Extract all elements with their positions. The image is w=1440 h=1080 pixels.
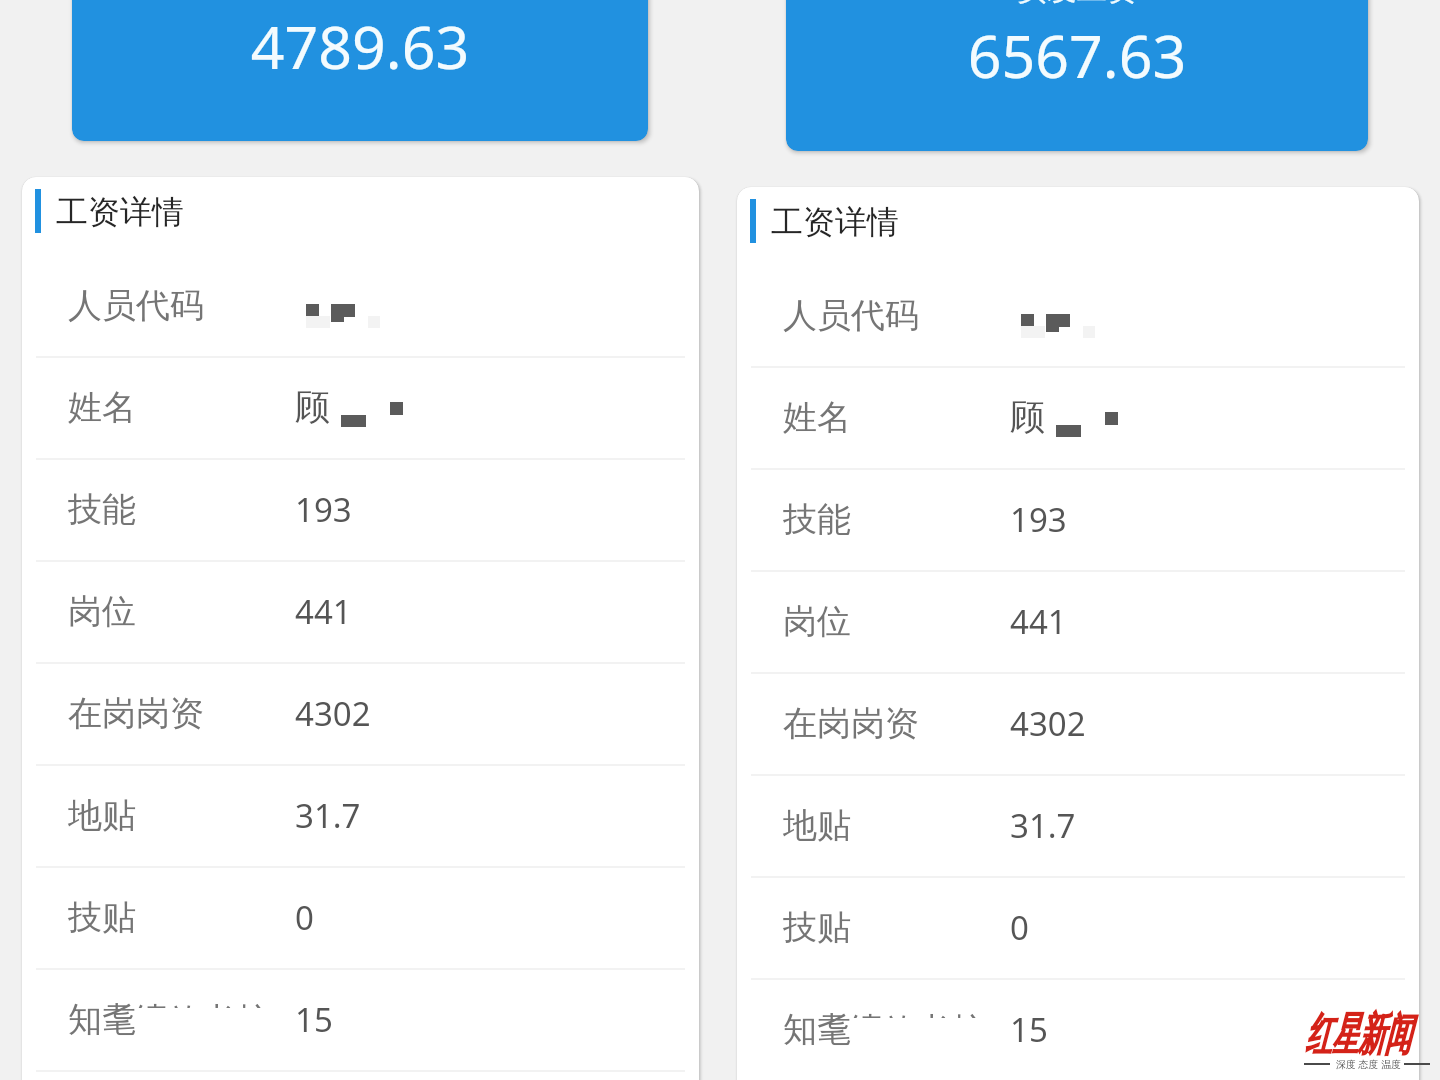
staticText: 技贴	[783, 906, 851, 949]
button[interactable]: 技能	[22, 458, 699, 560]
button[interactable]: 在岗岗资	[737, 672, 1419, 774]
staticText: 15	[295, 997, 333, 1042]
staticText: 15	[1010, 1007, 1048, 1052]
staticText: 0	[1010, 905, 1029, 950]
staticText: 人员代码	[68, 284, 204, 327]
staticText: 6567.63	[786, 15, 1368, 95]
staticText: 岗位	[68, 590, 136, 633]
staticText: 顾	[1010, 395, 1045, 439]
staticText: 顾	[295, 385, 330, 429]
staticText: 人员代码	[783, 294, 919, 337]
button[interactable]: 实发工资	[786, 0, 1368, 151]
staticText: 深度 态度 温度	[1336, 1057, 1402, 1071]
button[interactable]: 技能	[737, 468, 1419, 570]
staticText: 地贴	[783, 804, 851, 847]
staticText: 193	[295, 487, 352, 532]
staticText: 在岗岗资	[783, 702, 919, 745]
staticText: 0	[295, 895, 314, 940]
staticText: 工资详情	[771, 202, 899, 242]
button[interactable]: 在岗岗资	[22, 662, 699, 764]
staticText: 地贴	[68, 794, 136, 837]
button[interactable]: 姓名	[737, 366, 1419, 468]
staticText: 441	[1010, 599, 1067, 644]
button[interactable]: 红星新闻 watermark	[1304, 1002, 1436, 1072]
button[interactable]: 岗位	[22, 560, 699, 662]
staticText: 4302	[1010, 701, 1086, 746]
button[interactable]: 地贴	[737, 774, 1419, 876]
staticText: 技能	[783, 498, 851, 541]
staticText: 4302	[295, 691, 371, 736]
staticText: 4789.63	[72, 6, 648, 86]
staticText: 岗位	[783, 600, 851, 643]
staticText: 实发工资	[786, 0, 1368, 9]
staticText: 知耄	[68, 998, 136, 1041]
staticText: 在岗岗资	[68, 692, 204, 735]
staticText: 绩效考核	[849, 1011, 985, 1018]
staticText: 知耄	[783, 1008, 851, 1051]
staticText: 441	[295, 589, 352, 634]
staticText: 193	[1010, 497, 1067, 542]
staticText: 31.7	[1010, 803, 1076, 848]
button[interactable]: 实发工资	[72, 0, 648, 141]
staticText: 姓名	[783, 396, 851, 439]
staticText: 绩效考核	[134, 1001, 270, 1008]
staticText: 工资详情	[56, 192, 184, 232]
button[interactable]: 知耄	[22, 968, 699, 1070]
staticText: 31.7	[295, 793, 361, 838]
staticText: 红星新闻	[1305, 1006, 1411, 1064]
staticText: 技贴	[68, 896, 136, 939]
staticText: 技能	[68, 488, 136, 531]
button[interactable]: 技贴	[22, 866, 699, 968]
button[interactable]: 姓名	[22, 356, 699, 458]
button[interactable]: 人员代码	[22, 254, 699, 356]
button[interactable]: 知耄	[737, 978, 1419, 1080]
button[interactable]: 岗位	[737, 570, 1419, 672]
button[interactable]: 地贴	[22, 764, 699, 866]
button[interactable]: 技贴	[737, 876, 1419, 978]
staticText: 姓名	[68, 386, 136, 429]
button[interactable]: 人员代码	[737, 264, 1419, 366]
